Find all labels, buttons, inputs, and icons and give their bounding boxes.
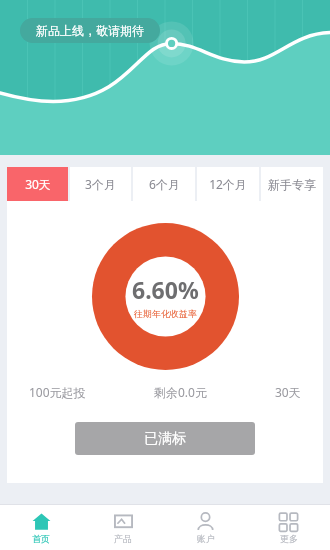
button[interactable]: 已满标 bbox=[75, 422, 255, 455]
button[interactable]: 新手专享 bbox=[261, 167, 323, 201]
staticText: 12个月 bbox=[209, 176, 247, 192]
staticText: 更多 bbox=[280, 533, 298, 544]
staticText: 已满标 bbox=[144, 430, 186, 448]
button[interactable]: 3个月 bbox=[70, 167, 131, 201]
staticText: 账户 bbox=[197, 533, 215, 544]
staticText: 首页 bbox=[32, 533, 50, 544]
button[interactable]: 更多 bbox=[247, 505, 330, 550]
staticText: 30天 bbox=[25, 176, 51, 192]
staticText: 剩余0.0元 bbox=[154, 384, 207, 400]
staticText: 100元起投 bbox=[29, 384, 86, 400]
button[interactable]: 首页 bbox=[0, 505, 82, 550]
staticText: 往期年化收益率 bbox=[134, 308, 197, 319]
staticText: 新品上线，敬请期待 bbox=[36, 23, 144, 38]
button[interactable]: 产品 bbox=[82, 505, 164, 550]
staticText: 6个月 bbox=[149, 176, 180, 192]
button[interactable]: 6个月 bbox=[133, 167, 195, 201]
button[interactable]: 新品上线，敬请期待 bbox=[20, 18, 160, 43]
staticText: 新手专享 bbox=[268, 177, 316, 192]
staticText: 产品 bbox=[114, 533, 132, 544]
button[interactable]: 30天 bbox=[7, 167, 68, 201]
staticText: 6.60% bbox=[132, 274, 199, 305]
staticText: 3个月 bbox=[85, 176, 116, 192]
staticText: 30天 bbox=[275, 384, 301, 400]
button[interactable]: 12个月 bbox=[197, 167, 259, 201]
button[interactable]: 账户 bbox=[164, 505, 247, 550]
